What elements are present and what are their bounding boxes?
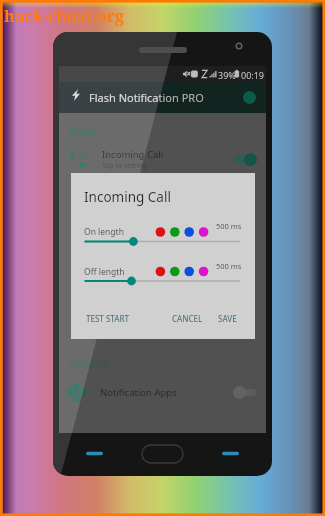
staticText: Incoming Call [102,148,164,161]
staticText: 39% [218,69,236,81]
staticText: 39% [218,69,236,81]
button[interactable]: TEST START [82,311,134,326]
staticText: Tap to setting [102,161,147,171]
staticText: 500 ms [216,221,242,231]
staticText: Advance [68,357,110,371]
staticText: 00:19 [241,69,265,81]
staticText: Incoming Call [84,188,171,206]
staticText: SAVE [218,313,237,324]
button[interactable]: Master switch [243,91,256,104]
button[interactable]: CANCEL [168,311,207,326]
staticText: CANCEL [172,313,203,324]
staticText: 00:19 [241,69,265,81]
staticText: Notification Apps [100,386,177,399]
staticText: Status [68,125,99,139]
button[interactable]: SAVE [214,311,241,326]
staticText: 500 ms [216,261,242,271]
staticText: Notification Apps [100,386,177,399]
button[interactable]: Master switch [243,91,256,104]
button[interactable]: Incoming Call [59,144,266,174]
staticText: Status [68,125,99,139]
button[interactable]: Incoming Call [59,144,266,174]
staticText: Tap to setting [102,161,147,171]
staticText: Off length [84,266,125,278]
button[interactable]: Notification Apps [59,377,266,407]
staticText: Advance [68,357,110,371]
staticText: Incoming Call [102,148,164,161]
staticText: hack-cheat.org [4,5,125,27]
staticText: On length [84,226,124,238]
staticText: Flash Notification PRO [89,90,204,105]
button[interactable]: Notification Apps [59,377,266,407]
staticText: Flash Notification PRO [89,90,204,105]
staticText: TEST START [86,313,130,324]
